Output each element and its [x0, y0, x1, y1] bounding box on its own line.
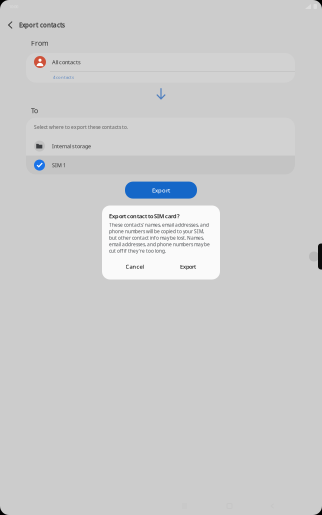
staticText: From	[31, 38, 48, 48]
button[interactable]: Side panel	[308, 243, 322, 269]
staticText: Cancel	[125, 263, 144, 270]
staticText: Export contact to SIM card?	[109, 212, 180, 220]
button[interactable]: Cancel	[120, 260, 150, 273]
staticText: 10:00	[9, 4, 18, 9]
staticText: 4 contacts	[53, 74, 74, 80]
button[interactable]: SIM 1	[26, 156, 295, 175]
button[interactable]: Export	[125, 182, 197, 199]
staticText: All contacts	[52, 58, 81, 66]
staticText: SIM 1	[52, 161, 66, 169]
button[interactable]: Internal storage	[26, 137, 295, 156]
button[interactable]: All contacts	[26, 53, 295, 83]
staticText: Select where to export these contacts to…	[34, 124, 128, 130]
staticText: Export	[152, 186, 170, 194]
staticText: Export	[180, 263, 196, 270]
staticText: These contacts' names, email addresses, …	[109, 221, 210, 254]
staticText: To	[31, 106, 38, 115]
staticText: Export contacts	[19, 21, 65, 29]
button[interactable]: Export	[173, 260, 203, 273]
staticText: Internal storage	[52, 142, 91, 150]
button[interactable]: Export contacts	[0, 17, 322, 33]
